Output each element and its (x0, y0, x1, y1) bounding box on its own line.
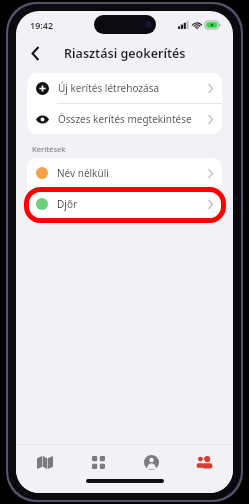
staticText: Kerítések (32, 144, 66, 154)
staticText: Djőr (57, 197, 78, 211)
staticText: Riasztási geokerítés (64, 45, 186, 62)
button[interactable]: Profil (127, 445, 175, 479)
button[interactable]: Összes kerítés megtekintése (27, 104, 222, 134)
button[interactable]: Djőr (27, 189, 222, 219)
staticText: Név nélküli (57, 166, 109, 180)
button[interactable]: Új kerítés létrehozása (27, 73, 222, 103)
staticText: Új kerítés létrehozása (58, 81, 160, 95)
button[interactable]: Csoportok (180, 445, 228, 479)
staticText: 19:42 (30, 19, 54, 31)
button[interactable]: Alkalmazások (74, 445, 122, 479)
button[interactable]: Név nélküli (27, 158, 222, 188)
button[interactable]: Vissza (22, 40, 48, 66)
button[interactable]: Térkép (21, 445, 69, 479)
staticText: Összes kerítés megtekintése (58, 112, 192, 126)
